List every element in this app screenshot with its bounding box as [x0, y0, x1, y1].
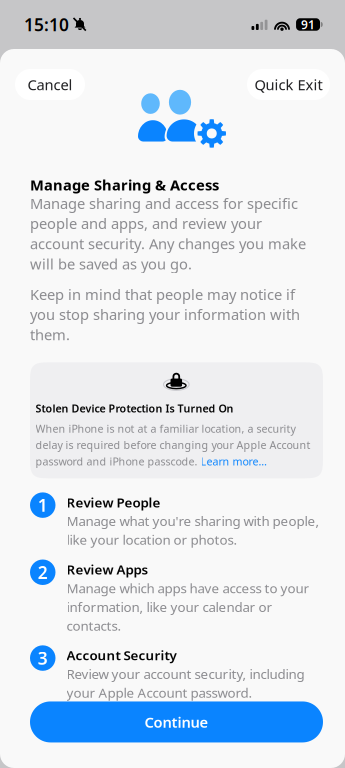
staticText: 1 — [38, 494, 48, 517]
staticText: Quick Exit — [254, 75, 322, 94]
button[interactable]: 2 — [30, 559, 323, 634]
staticText: Learn more… — [200, 454, 266, 468]
staticText: 3 — [38, 647, 48, 670]
button[interactable]: Cancel — [15, 69, 85, 100]
staticText: Stolen Device Protection Is Turned On — [35, 401, 233, 415]
staticText: Manage which apps have access to your in… — [66, 579, 309, 634]
staticText: 91 — [301, 16, 315, 32]
staticText: Review Apps — [66, 560, 148, 578]
staticText: Continue — [144, 712, 208, 732]
button[interactable]: 3 — [30, 645, 323, 701]
staticText: Account Security — [66, 646, 176, 664]
button[interactable]: 1 — [30, 492, 323, 548]
staticText: Review People — [66, 493, 160, 511]
staticText: Cancel — [27, 75, 72, 94]
button[interactable]: Learn more… — [200, 454, 266, 468]
staticText: When iPhone is not at a familiar locatio… — [35, 421, 295, 436]
staticText: Manage Sharing & Access — [30, 175, 219, 194]
button[interactable]: Continue — [30, 701, 323, 742]
staticText: 15:10 — [24, 13, 69, 36]
staticText: Manage sharing and access for specific p… — [30, 193, 306, 273]
button[interactable]: Quick Exit — [247, 69, 330, 100]
staticText: delay is required before changing your A… — [35, 438, 310, 452]
staticText: Manage what you're sharing with people, … — [66, 512, 319, 548]
staticText: Keep in mind that people may notice if y… — [30, 284, 300, 344]
staticText: Review your account security, including … — [66, 665, 304, 701]
staticText: password and iPhone passcode. — [35, 454, 200, 468]
staticText: 2 — [38, 561, 48, 584]
